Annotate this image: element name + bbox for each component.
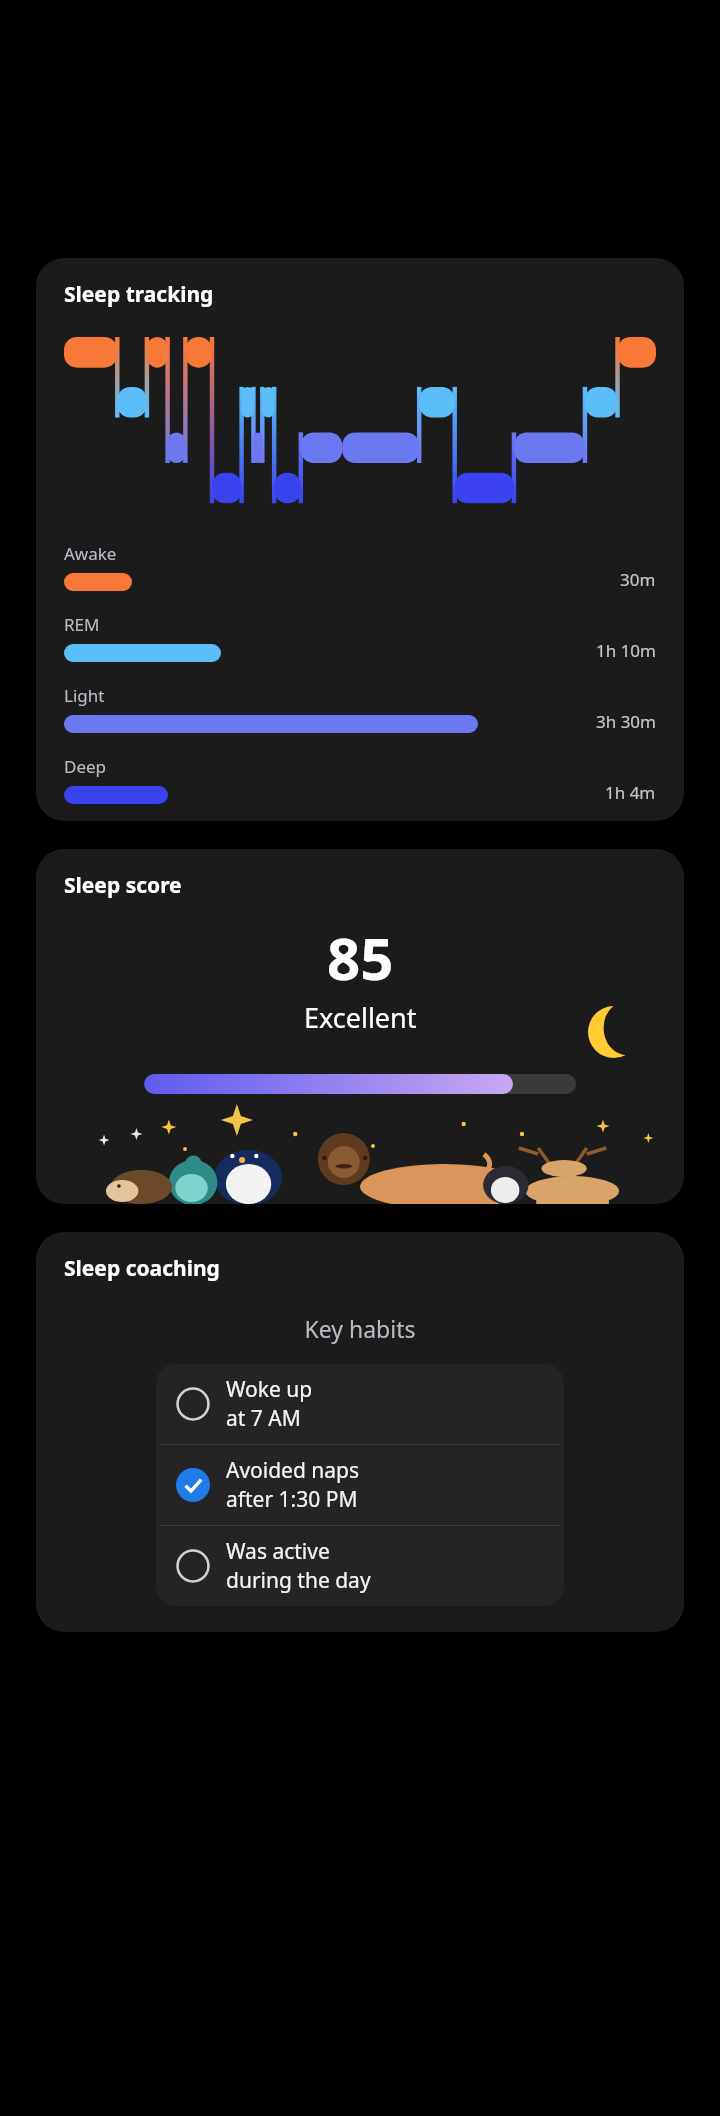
button[interactable]: Woke up [156,1364,564,1444]
staticText: during the day [226,1566,371,1595]
staticText: Woke up [226,1375,313,1404]
staticText: Sleep coaching [64,1254,220,1283]
button[interactable]: Sleep tracking [36,258,684,821]
staticText: Deep [64,755,107,778]
other: Moon [588,1006,640,1058]
staticText: 1h 4m [605,781,656,804]
staticText: Avoided naps [226,1456,360,1485]
staticText: 85 [327,918,394,997]
button[interactable]: Was active [156,1526,564,1606]
staticText: Excellent [304,999,417,1036]
staticText: Light [64,684,105,707]
staticText: Sleep tracking [64,280,214,309]
staticText: 1h 10m [596,639,656,662]
button[interactable]: Sleep coaching [36,1232,684,1632]
button[interactable]: Sleep score [36,849,684,1204]
staticText: Was active [226,1537,330,1566]
staticText: at 7 AM [226,1404,301,1433]
staticText: 30m [620,568,656,591]
staticText: Key habits [36,1313,684,1344]
staticText: after 1:30 PM [226,1485,358,1514]
staticText: Awake [64,542,117,565]
staticText: Sleep score [64,871,182,900]
staticText: 3h 30m [596,710,656,733]
button[interactable]: Avoided naps [156,1445,564,1525]
staticText: REM [64,613,100,636]
